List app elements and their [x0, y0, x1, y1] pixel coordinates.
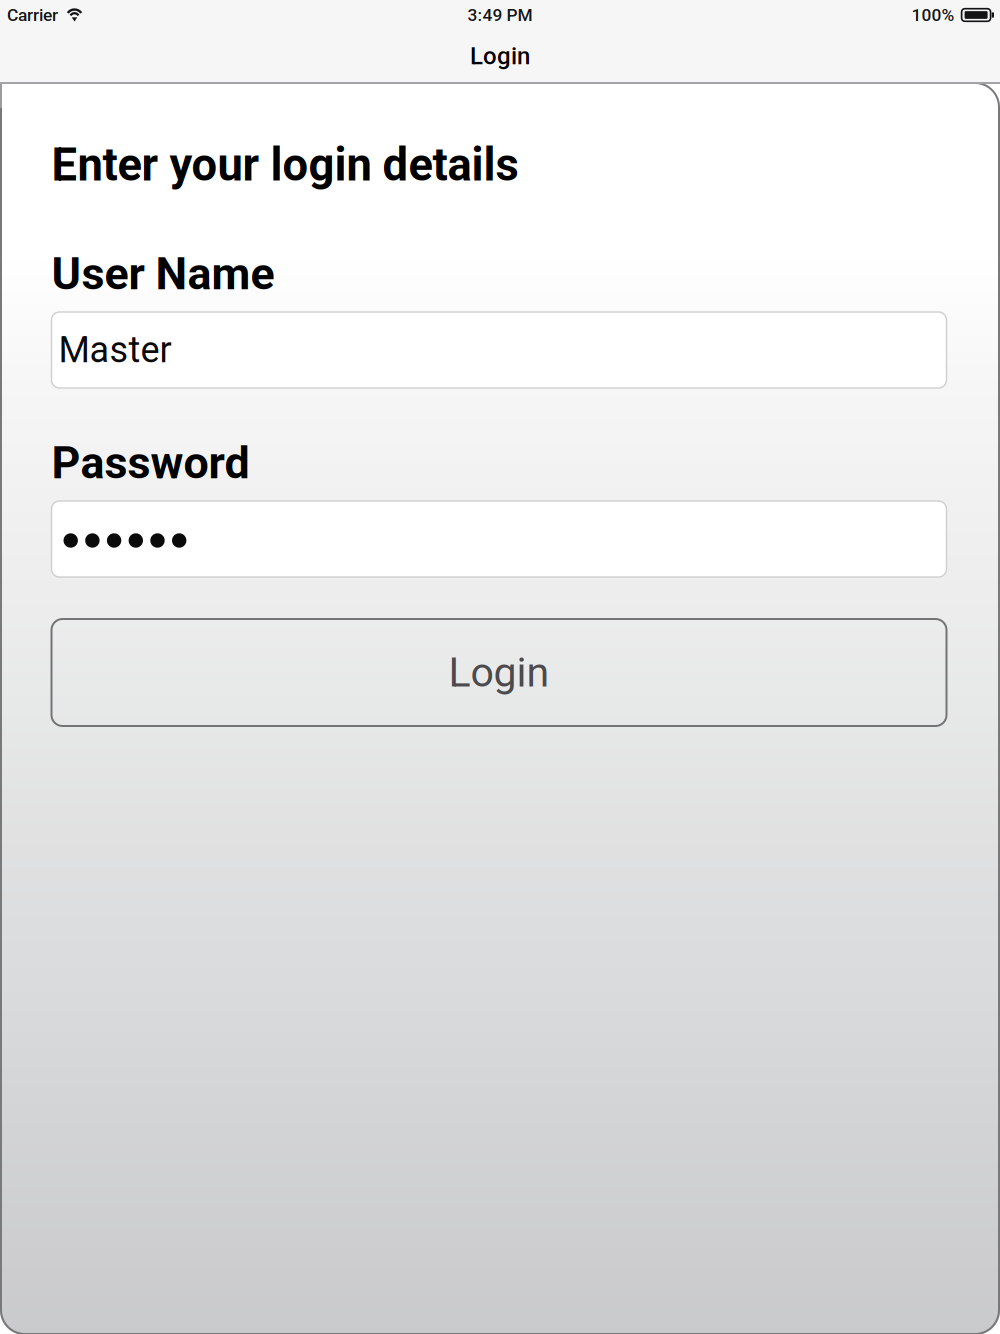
staticText: 3:49 PM	[467, 5, 532, 25]
button[interactable]: Password	[51, 501, 946, 577]
staticText: Login	[448, 648, 549, 696]
staticText: 100%	[912, 5, 955, 25]
button[interactable]: Login	[51, 619, 946, 726]
button[interactable]: Master	[51, 312, 946, 388]
staticText: Carrier	[7, 5, 58, 25]
staticText: Master	[58, 329, 171, 371]
staticText: Login	[470, 42, 530, 70]
staticText: User Name	[51, 248, 274, 300]
staticText: Enter your login details	[51, 138, 518, 191]
staticText: Password	[51, 437, 249, 489]
